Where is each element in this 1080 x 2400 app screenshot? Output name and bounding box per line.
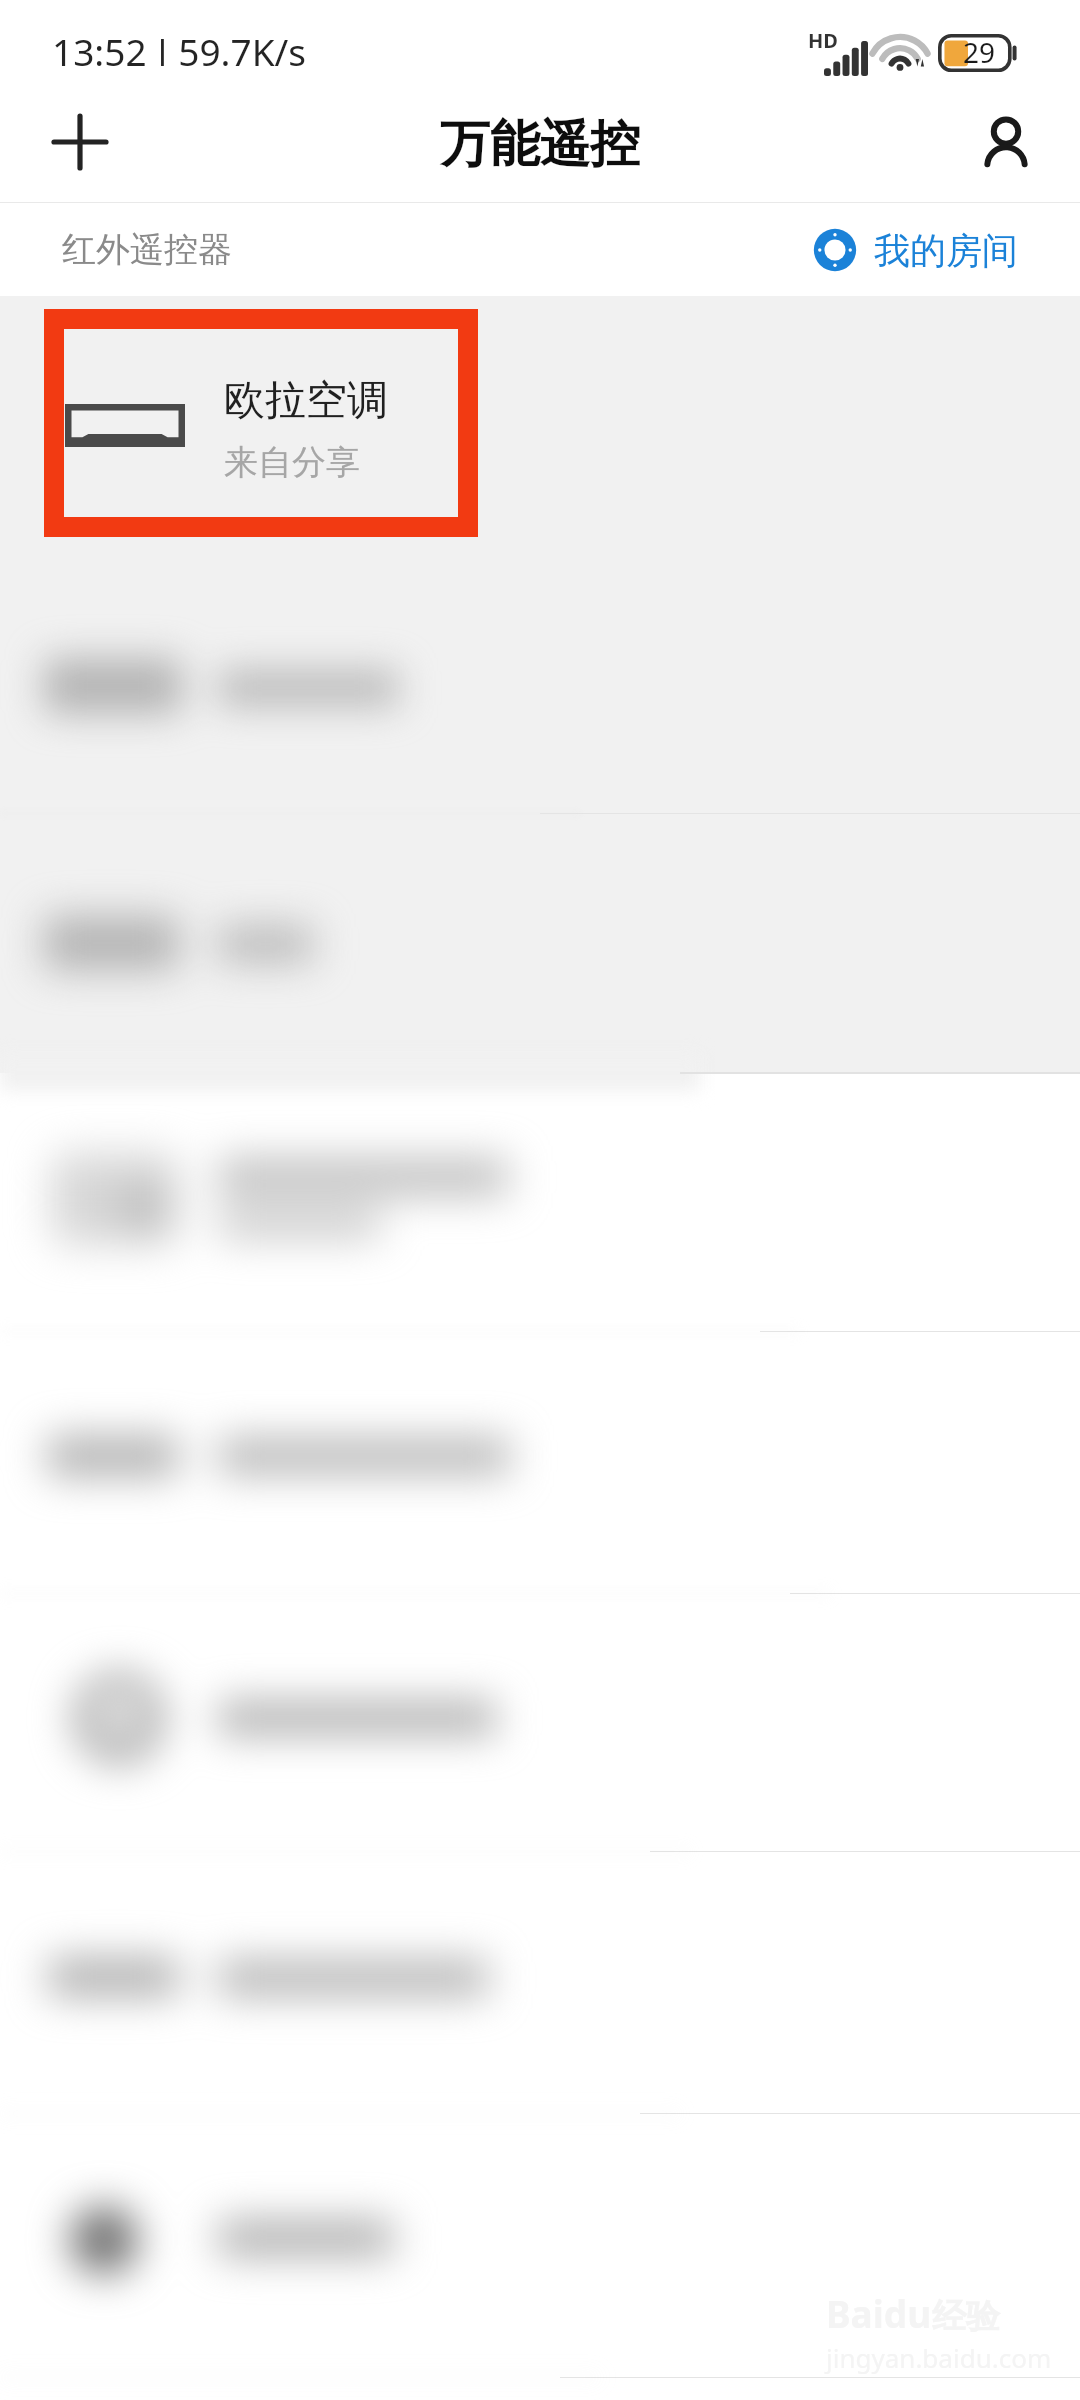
staticText: 红外遥控器 — [62, 228, 232, 271]
button[interactable]: Remote device — [0, 1327, 1080, 1585]
button[interactable]: Remote device — [0, 1589, 1080, 1847]
staticText: 欧拉空调 — [224, 375, 388, 427]
button[interactable]: Remote device — [0, 815, 1080, 1073]
staticText: 经验 — [932, 2295, 1000, 2338]
staticText: 13:52 ǀ 59.7K/s — [52, 26, 307, 76]
staticText: 万能遥控 — [440, 113, 640, 176]
button[interactable]: Profile — [954, 91, 1058, 193]
button[interactable]: 欧拉空调 — [64, 329, 458, 517]
staticText: jingyan.baidu.com — [826, 2340, 1052, 2375]
button[interactable]: Remote device — [0, 1069, 1080, 1327]
button[interactable]: 我的房间 — [812, 227, 1018, 273]
staticText: Baidu — [826, 2288, 932, 2338]
staticText: 我的房间 — [874, 228, 1018, 273]
button[interactable]: Remote device — [0, 1849, 1080, 2107]
button[interactable]: Remote device — [0, 2109, 1080, 2367]
staticText: HD — [808, 27, 838, 54]
button[interactable]: Remote device — [0, 559, 1080, 817]
staticText: 来自分享 — [224, 441, 360, 484]
staticText: 29 — [963, 33, 996, 71]
button[interactable]: Add remote — [28, 91, 132, 193]
